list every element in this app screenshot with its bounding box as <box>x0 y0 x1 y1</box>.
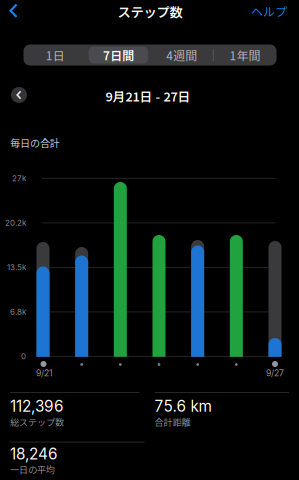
staticText: 1年間 <box>229 46 260 64</box>
button[interactable]: 戻る <box>7 2 21 19</box>
staticText: 20.2k <box>5 218 26 228</box>
staticText: 総ステップ数 <box>10 415 64 428</box>
staticText: 75.6 km <box>154 397 211 415</box>
staticText: 0 <box>21 352 26 361</box>
button[interactable]: 前の週 <box>11 87 27 103</box>
staticText: 9月21日 - 27日 <box>105 87 190 105</box>
staticText: 13.5k <box>7 263 26 272</box>
button[interactable]: ヘルプ <box>242 1 296 21</box>
staticText: ステップ数 <box>117 2 182 21</box>
staticText: 18,246 <box>10 444 58 463</box>
staticText: 9/21 <box>36 368 53 378</box>
staticText: ヘルプ <box>251 2 287 20</box>
staticText: 1日 <box>46 46 65 64</box>
staticText: 一日の平均 <box>10 463 55 476</box>
staticText: 6.8k <box>10 307 26 317</box>
staticText: 合計距離 <box>154 415 190 428</box>
button[interactable]: 1日 <box>23 44 87 65</box>
staticText: 9/27 <box>266 368 284 378</box>
staticText: 7日間 <box>103 46 134 64</box>
staticText: 4週間 <box>166 46 197 64</box>
button[interactable]: 7日間 <box>87 44 150 65</box>
staticText: 毎日の合計 <box>10 135 60 150</box>
button[interactable]: 4週間 <box>150 44 213 65</box>
button[interactable]: 1年間 <box>213 44 276 65</box>
staticText: 27k <box>12 174 26 183</box>
staticText: 112,396 <box>10 397 64 415</box>
